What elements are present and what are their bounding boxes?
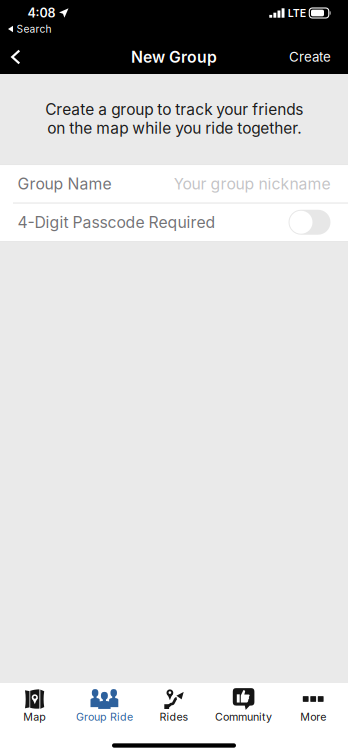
staticText: Create	[289, 49, 331, 65]
button[interactable]: 4-Digit Passcode Required	[288, 210, 330, 235]
staticText: Group Name	[17, 174, 111, 193]
staticText: LTE	[288, 6, 306, 19]
staticText: Community	[215, 710, 272, 723]
button[interactable]: Create	[273, 40, 348, 74]
staticText: Create a group to track your friends on …	[45, 100, 303, 137]
staticText: Map	[23, 710, 46, 723]
button[interactable]: Back	[0, 40, 36, 74]
staticText: Search	[16, 23, 51, 35]
button[interactable]: Rides	[139, 684, 209, 727]
staticText: Your group nickname	[173, 174, 330, 193]
button[interactable]: More	[278, 684, 348, 727]
staticText: 4-Digit Passcode Required	[17, 213, 215, 232]
staticText: Rides	[159, 710, 188, 723]
staticText: New Group	[131, 47, 217, 66]
button[interactable]: Community	[209, 684, 278, 727]
staticText: More	[300, 710, 326, 723]
button[interactable]: Map	[0, 684, 70, 727]
staticText: Group Ride	[76, 710, 133, 723]
staticText: 4:08	[27, 5, 55, 21]
button[interactable]: Group Ride	[70, 684, 139, 727]
